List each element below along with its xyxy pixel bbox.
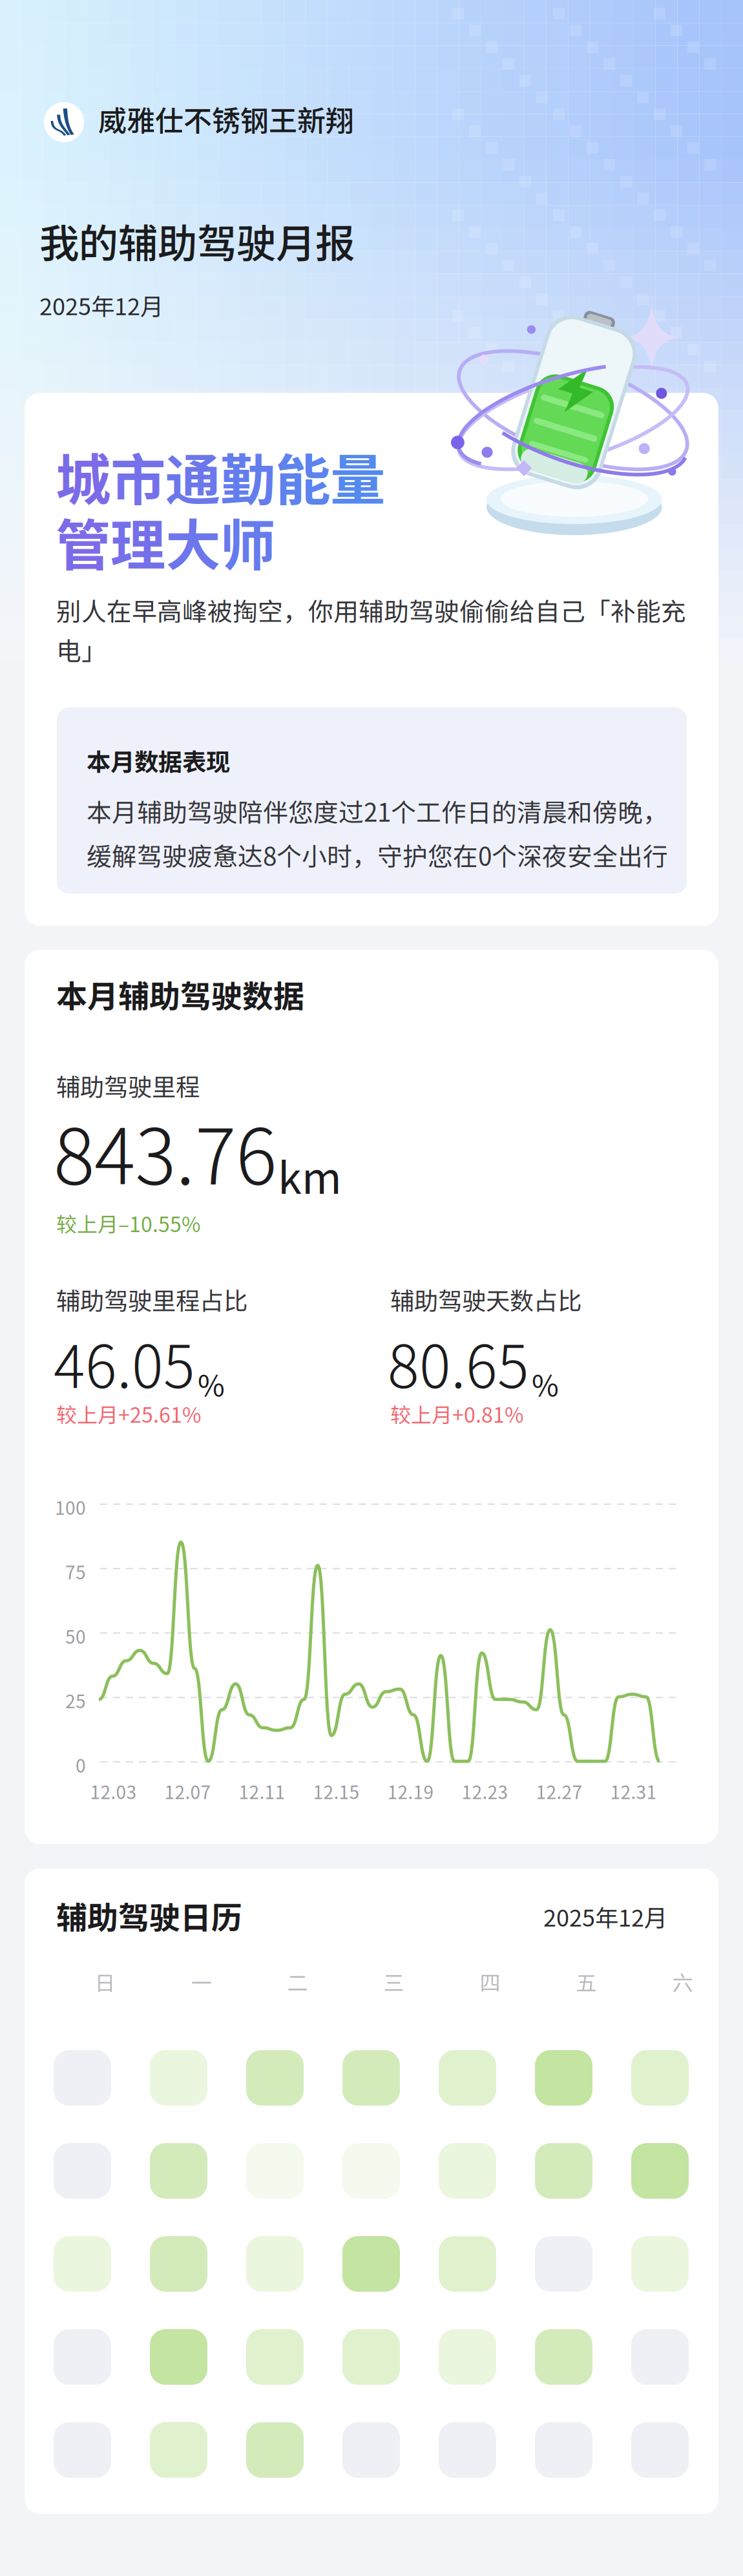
- staticText: 辅助驾驶日历: [56, 1893, 242, 1938]
- staticText: 12.19: [387, 1778, 434, 1804]
- staticText: 50: [65, 1623, 86, 1649]
- staticText: 城: [56, 436, 110, 516]
- staticText: 本月数据表现: [87, 743, 230, 778]
- staticText: 我的辅助驾驶月报: [39, 212, 355, 269]
- staticText: 五: [576, 1967, 597, 1997]
- staticText: 辅助驾驶里程: [56, 1068, 200, 1103]
- staticText: 日: [95, 1967, 115, 1997]
- staticText: 六: [672, 1967, 693, 1997]
- staticText: 二: [287, 1967, 308, 1997]
- staticText: 一: [191, 1967, 212, 1997]
- staticText: 12.03: [90, 1778, 137, 1804]
- staticText: 12.27: [536, 1778, 582, 1804]
- staticText: 2025年12月: [39, 288, 163, 322]
- staticText: 较上月+0.81%: [390, 1399, 523, 1429]
- staticText: 勤: [220, 436, 275, 516]
- staticText: 12.15: [313, 1778, 360, 1804]
- staticText: 通: [165, 436, 220, 516]
- staticText: 0: [76, 1752, 86, 1778]
- staticText: 别人在早高峰被掏空，你用辅助驾驶偷偷给自己「补能充: [56, 592, 686, 628]
- staticText: 100: [55, 1494, 86, 1520]
- staticText: 较上月–10.55%: [56, 1208, 200, 1238]
- staticText: 843.76: [54, 1095, 277, 1206]
- staticText: %: [198, 1362, 225, 1405]
- staticText: 理: [110, 501, 165, 581]
- staticText: 电」: [56, 631, 107, 667]
- staticText: 四: [480, 1967, 500, 1997]
- staticText: km: [278, 1144, 342, 1206]
- staticText: 威雅仕不锈钢王新翔: [98, 98, 354, 139]
- staticText: 12.11: [239, 1778, 285, 1804]
- staticText: 较上月+25.61%: [56, 1399, 201, 1429]
- staticText: 师: [220, 501, 275, 581]
- staticText: 管: [56, 501, 110, 581]
- staticText: 能: [275, 436, 330, 516]
- staticText: 12.31: [610, 1778, 657, 1804]
- staticText: 12.07: [164, 1778, 211, 1804]
- staticText: 46.05: [54, 1320, 195, 1405]
- staticText: 量: [330, 436, 385, 516]
- staticText: 12.23: [462, 1778, 508, 1804]
- staticText: 辅助驾驶天数占比: [390, 1282, 581, 1317]
- staticText: 大: [165, 501, 220, 581]
- staticText: 25: [65, 1687, 86, 1713]
- staticText: 本月辅助驾驶数据: [56, 972, 304, 1017]
- staticText: 辅助驾驶里程占比: [56, 1282, 247, 1317]
- staticText: %: [532, 1362, 559, 1405]
- staticText: 75: [65, 1558, 86, 1584]
- staticText: 80.65: [388, 1320, 529, 1405]
- staticText: 本月辅助驾驶陪伴您度过21个工作日的清晨和傍晚，: [87, 793, 668, 829]
- staticText: 缓解驾驶疲惫达8个小时，守护您在0个深夜安全出行: [87, 837, 668, 873]
- staticText: 2025年12月: [543, 1900, 667, 1933]
- staticText: 市: [110, 436, 165, 516]
- staticText: 三: [383, 1967, 404, 1997]
